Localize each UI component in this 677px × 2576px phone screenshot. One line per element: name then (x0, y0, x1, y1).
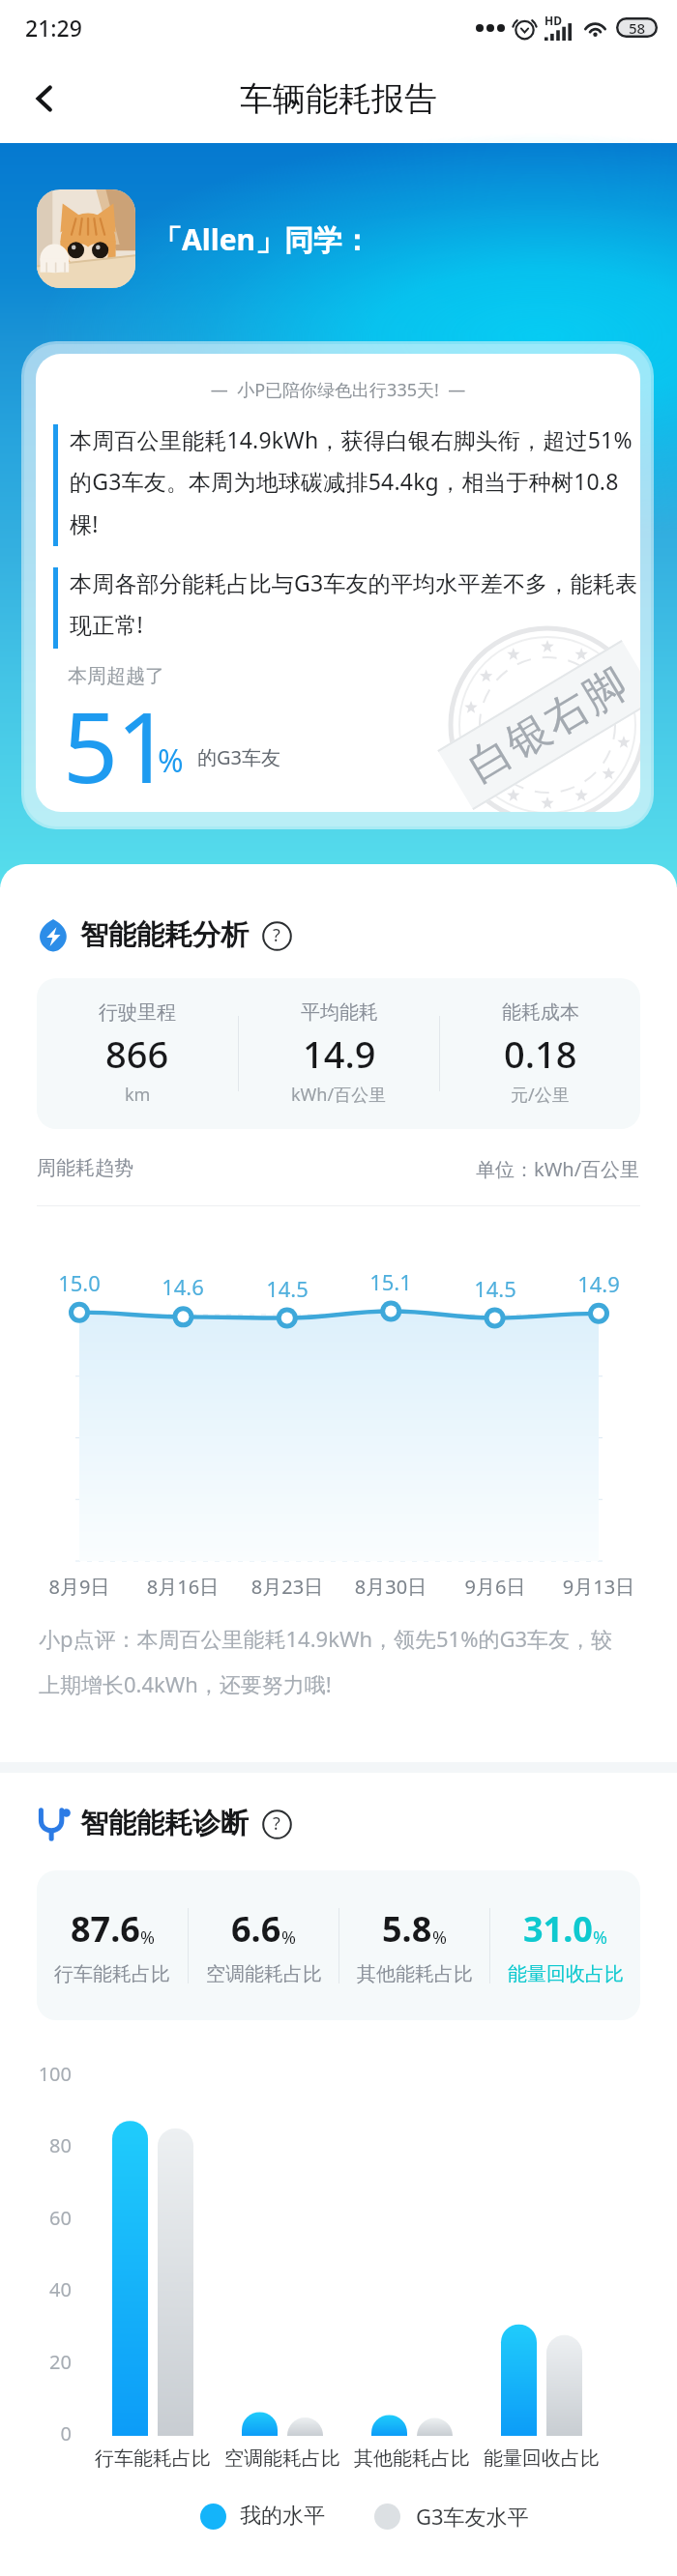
staticText: 866 (105, 1028, 169, 1079)
staticText: 80 (25, 2132, 72, 2158)
button[interactable]: Help (260, 919, 293, 952)
staticText: 能量回收占比 (479, 2446, 604, 2471)
staticText: 51 (63, 680, 170, 811)
staticText: 14.9 (560, 1269, 637, 1298)
button[interactable]: Help (260, 1808, 293, 1840)
staticText: 87.6 (71, 1905, 140, 1953)
staticText: 本周百公里能耗14.9kWh，获得白银右脚头衔，超过51%的G3车友。本周为地球… (70, 424, 638, 539)
staticText: % (432, 1925, 447, 1950)
staticText: 能耗成本 (502, 1000, 579, 1025)
staticText: 20 (25, 2349, 72, 2375)
staticText: 40 (25, 2276, 72, 2302)
staticText: 行车能耗占比 (54, 1962, 170, 1986)
staticText: 平均能耗 (301, 1000, 378, 1025)
staticText: 白银右脚 (458, 657, 638, 794)
staticText: 本周超越了 (68, 664, 164, 688)
staticText: ? (273, 923, 280, 947)
staticText: 58 (629, 18, 646, 38)
staticText: 14.5 (249, 1274, 326, 1303)
staticText: 智能能耗分析 (80, 917, 249, 953)
staticText: km (125, 1083, 151, 1107)
staticText: 6.6 (231, 1905, 281, 1953)
staticText: ? (273, 1811, 280, 1836)
staticText: 车辆能耗报告 (240, 78, 437, 120)
staticText: 其他能耗占比 (357, 1962, 473, 1986)
staticText: 60 (25, 2205, 72, 2231)
staticText: 的G3车友 (197, 744, 280, 770)
staticText: % (281, 1925, 296, 1950)
staticText: — 小P已陪你绿色出行335天! — (36, 378, 640, 402)
staticText: 空调能耗占比 (206, 1962, 322, 1986)
staticText: 能量回收占比 (508, 1962, 624, 1986)
staticText: HD (545, 13, 562, 28)
staticText: 100 (25, 2061, 72, 2087)
staticText: 其他能耗占比 (349, 2446, 475, 2471)
staticText: kWh/百公里 (291, 1083, 387, 1107)
staticText: 9月6日 (442, 1574, 548, 1600)
staticText: 9月13日 (545, 1574, 652, 1600)
staticText: 小p点评：本周百公里能耗14.9kWh，领先51%的G3车友，较上期增长0.4k… (39, 1624, 623, 1699)
staticText: 空调能耗占比 (220, 2446, 345, 2471)
staticText: 0 (25, 2420, 72, 2446)
staticText: 单位：kWh/百公里 (476, 1156, 640, 1182)
staticText: 14.6 (144, 1272, 221, 1301)
staticText: 周能耗趋势 (37, 1156, 133, 1180)
button[interactable]: Back (15, 70, 74, 128)
staticText: 行驶里程 (99, 1000, 176, 1025)
staticText: % (593, 1925, 607, 1950)
staticText: G3车友水平 (416, 2502, 529, 2531)
staticText: 31.0 (523, 1905, 593, 1953)
staticText: 0.18 (504, 1028, 577, 1079)
staticText: 8月30日 (338, 1574, 444, 1600)
staticText: 14.9 (303, 1028, 376, 1079)
staticText: 8月9日 (26, 1574, 132, 1600)
staticText: 8月16日 (130, 1574, 236, 1600)
staticText: 「Allen」同学： (153, 219, 372, 259)
staticText: % (158, 739, 184, 782)
staticText: 元/公里 (511, 1083, 570, 1107)
staticText: 15.1 (352, 1267, 429, 1296)
staticText: 行车能耗占比 (90, 2446, 216, 2471)
staticText: 14.5 (456, 1274, 534, 1303)
staticText: 21:29 (25, 13, 82, 43)
staticText: 智能能耗诊断 (80, 1806, 249, 1841)
staticText: 本周各部分能耗占比与G3车友的平均水平差不多，能耗表现正常! (70, 567, 638, 640)
staticText: 8月23日 (234, 1574, 340, 1600)
staticText: 5.8 (382, 1905, 432, 1953)
staticText: 15.0 (41, 1268, 118, 1297)
staticText: 我的水平 (240, 2503, 325, 2530)
staticText: % (140, 1925, 155, 1950)
